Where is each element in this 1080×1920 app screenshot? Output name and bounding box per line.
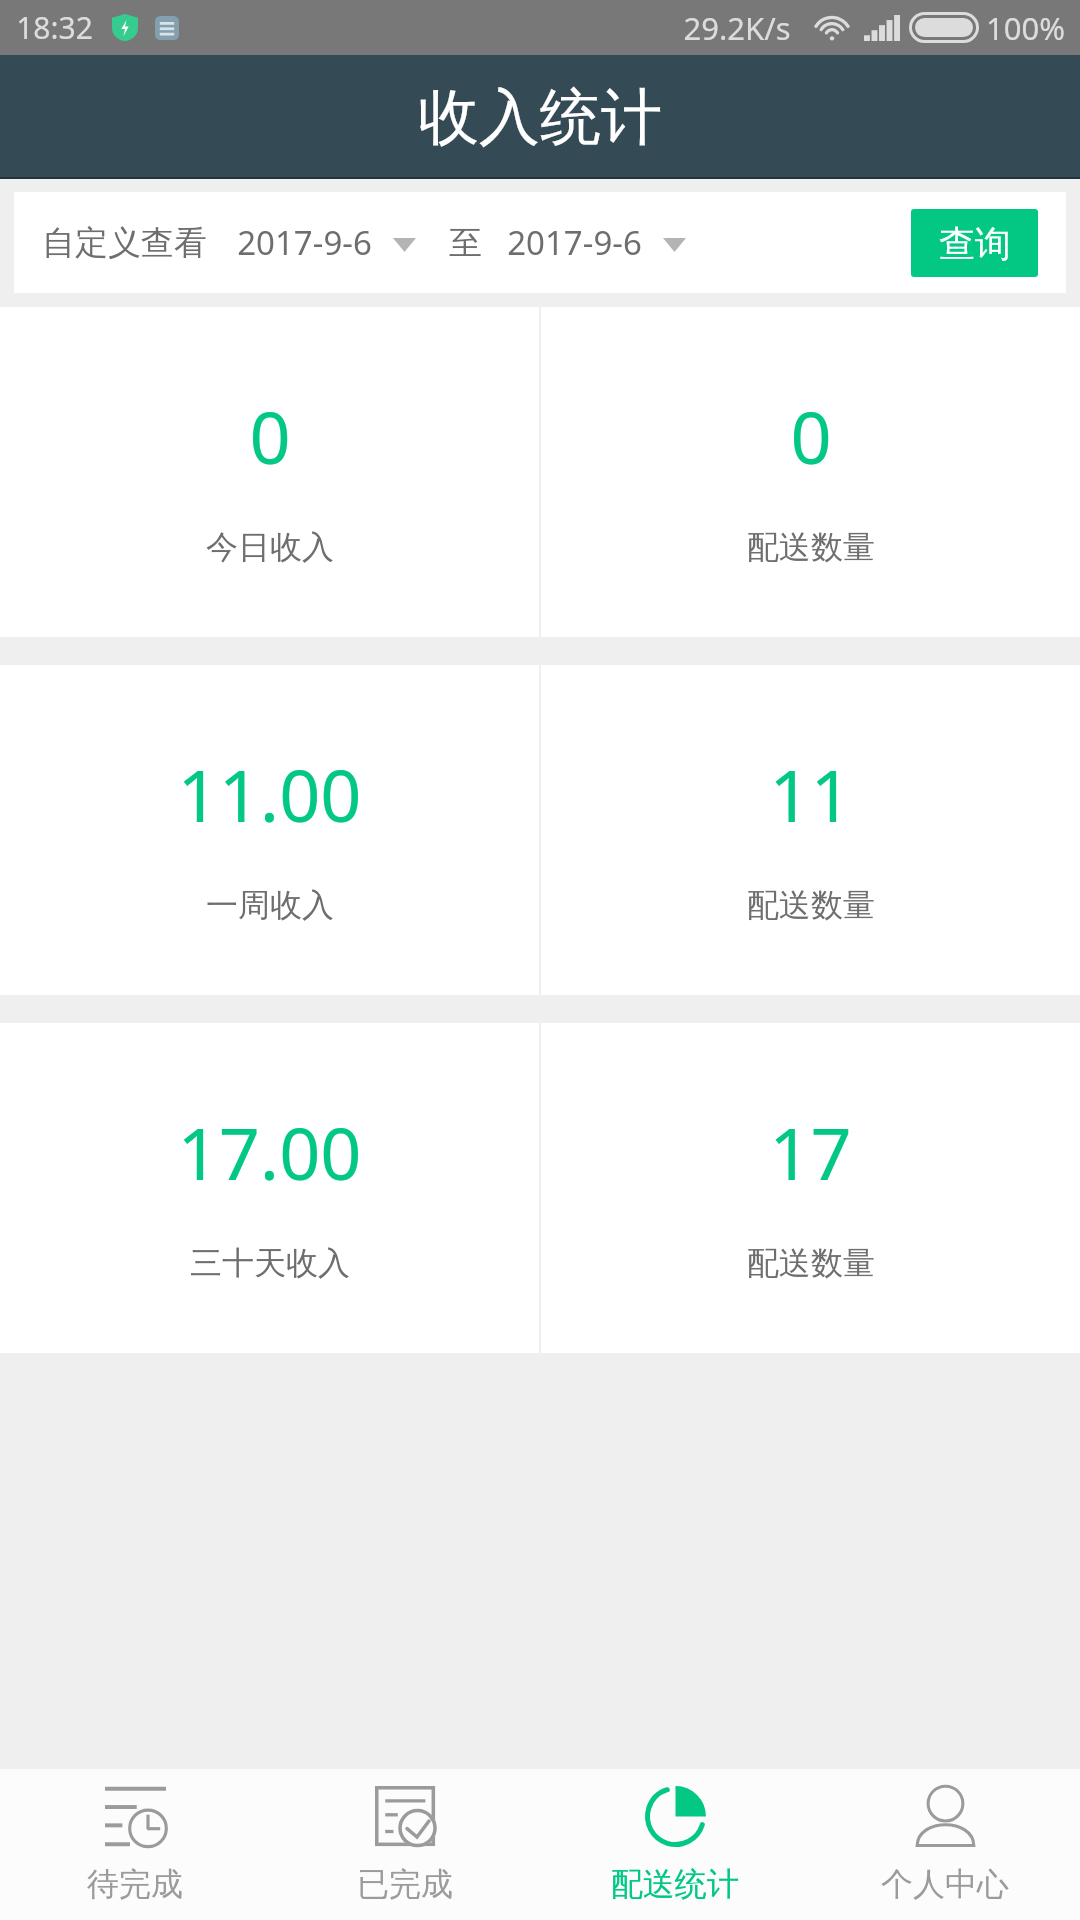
staticText: 17	[769, 1103, 852, 1201]
staticText: 0	[249, 387, 291, 485]
staticText: 11	[769, 745, 852, 843]
staticText: 收入统计	[418, 79, 662, 156]
button[interactable]: 11.00	[0, 665, 539, 995]
staticText: 今日收入	[206, 527, 334, 567]
staticText: 11.00	[177, 745, 362, 843]
button[interactable]: 2017-9-6	[237, 192, 416, 293]
staticText: 配送数量	[747, 885, 875, 925]
staticText: 18:32	[16, 7, 93, 48]
staticText: 29.2K/s	[683, 7, 791, 49]
staticText: 配送数量	[747, 527, 875, 567]
staticText: 配送数量	[747, 1243, 875, 1283]
other: Pick date	[393, 238, 416, 252]
staticText: 三十天收入	[190, 1243, 350, 1283]
staticText: 100%	[986, 7, 1065, 49]
staticText: 待完成	[87, 1864, 183, 1904]
staticText: 至	[449, 222, 482, 264]
button[interactable]: 个人中心	[810, 1769, 1080, 1920]
staticText: 2017-9-6	[237, 220, 372, 265]
staticText: 一周收入	[206, 885, 334, 925]
staticText: 配送统计	[611, 1864, 739, 1904]
button[interactable]: 已完成	[270, 1769, 540, 1920]
button[interactable]: 查询	[911, 209, 1038, 277]
staticText: 17.00	[177, 1103, 362, 1201]
button[interactable]: 0	[541, 307, 1080, 637]
button[interactable]: 17.00	[0, 1023, 539, 1353]
staticText: 2017-9-6	[507, 220, 642, 265]
staticText: 0	[790, 387, 832, 485]
button[interactable]: 17	[541, 1023, 1080, 1353]
staticText: 已完成	[357, 1864, 453, 1904]
button[interactable]: 待完成	[0, 1769, 270, 1920]
other: Pick date	[663, 238, 686, 252]
button[interactable]: 11	[541, 665, 1080, 995]
staticText: 查询	[939, 221, 1011, 266]
button[interactable]: 2017-9-6	[507, 192, 686, 293]
button[interactable]: 0	[0, 307, 539, 637]
button[interactable]: 配送统计	[540, 1769, 810, 1920]
staticText: 个人中心	[881, 1864, 1009, 1904]
staticText: 自定义查看	[42, 222, 207, 264]
